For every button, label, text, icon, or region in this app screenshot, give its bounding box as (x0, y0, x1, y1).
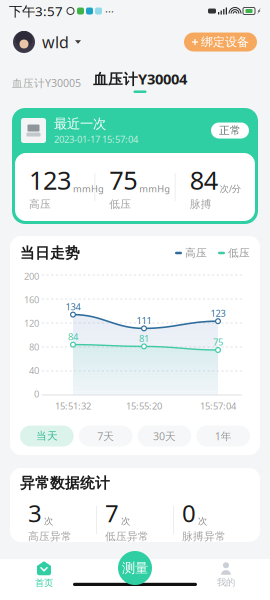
staticText: 血压计Y30004 (93, 69, 187, 88)
staticText: 当日走势 (20, 244, 80, 262)
staticText: 脉搏异常 (182, 530, 226, 543)
button[interactable]: 30天 (137, 425, 191, 446)
staticText: 84 (190, 163, 218, 197)
staticText: 最近一次 (54, 116, 106, 132)
staticText: 低压异常 (105, 530, 149, 543)
staticText: 3 (28, 497, 42, 529)
staticText: 40 (29, 364, 39, 376)
button[interactable]: 1年 (196, 425, 250, 446)
button[interactable]: 首页 (0, 560, 88, 590)
staticText: mmHg (73, 182, 104, 195)
button[interactable]: 我的 (182, 560, 270, 590)
staticText: 低压 (228, 246, 250, 259)
staticText: 200 (24, 270, 39, 282)
staticText: ··· (105, 4, 114, 18)
staticText: 我的 (217, 577, 235, 588)
button[interactable]: 血压计Y30004 (93, 69, 187, 93)
staticText: 15:55:20 (126, 400, 162, 412)
staticText: 低压 (109, 198, 131, 211)
staticText: mmHg (139, 182, 170, 195)
staticText: 绑定设备 (201, 35, 249, 49)
staticText: 当天 (36, 429, 58, 442)
staticText: 首页 (35, 577, 53, 589)
staticText: 正常 (219, 124, 241, 137)
staticText: 次 (121, 515, 130, 527)
staticText: 0 (34, 388, 39, 400)
button[interactable]: 血压计Y30005 (12, 76, 81, 93)
button[interactable]: 7天 (79, 425, 133, 446)
button[interactable]: 测量 (118, 551, 152, 585)
staticText: 111 (136, 314, 151, 327)
staticText: 30天 (153, 429, 176, 443)
staticText: 高压 (185, 246, 207, 259)
staticText: 134 (65, 300, 80, 313)
staticText: 下午3:57 (9, 2, 63, 20)
staticText: 测量 (122, 560, 148, 576)
staticText: 123 (29, 163, 71, 197)
staticText: 次 (44, 515, 53, 527)
staticText: 120 (24, 317, 39, 329)
staticText: 次/分 (220, 182, 241, 195)
staticText: 血压计Y30005 (12, 76, 81, 90)
button[interactable]: 绑定设备 (184, 32, 257, 51)
staticText: 80 (29, 341, 39, 353)
staticText: 2023-01-17 15:57:04 (54, 133, 138, 145)
staticText: 7天 (97, 429, 114, 443)
staticText: 7 (105, 497, 119, 529)
staticText: 高压异常 (28, 530, 72, 543)
staticText: 75 (109, 163, 137, 197)
staticText: 81 (139, 332, 149, 345)
staticText: 160 (24, 293, 39, 306)
staticText: 1年 (215, 429, 232, 443)
staticText: 次 (198, 515, 207, 527)
staticText: 异常数据统计 (20, 474, 110, 492)
staticText: 15:57:04 (200, 400, 236, 412)
staticText: 0 (182, 497, 196, 529)
staticText: 84 (68, 330, 78, 343)
staticText: 脉搏 (190, 198, 212, 211)
staticText: 高压 (29, 198, 51, 211)
button[interactable]: 当天 (20, 425, 74, 446)
staticText: wld (42, 31, 69, 53)
staticText: 75 (213, 336, 223, 348)
staticText: 123 (210, 307, 225, 319)
staticText: 15:51:32 (55, 400, 91, 412)
